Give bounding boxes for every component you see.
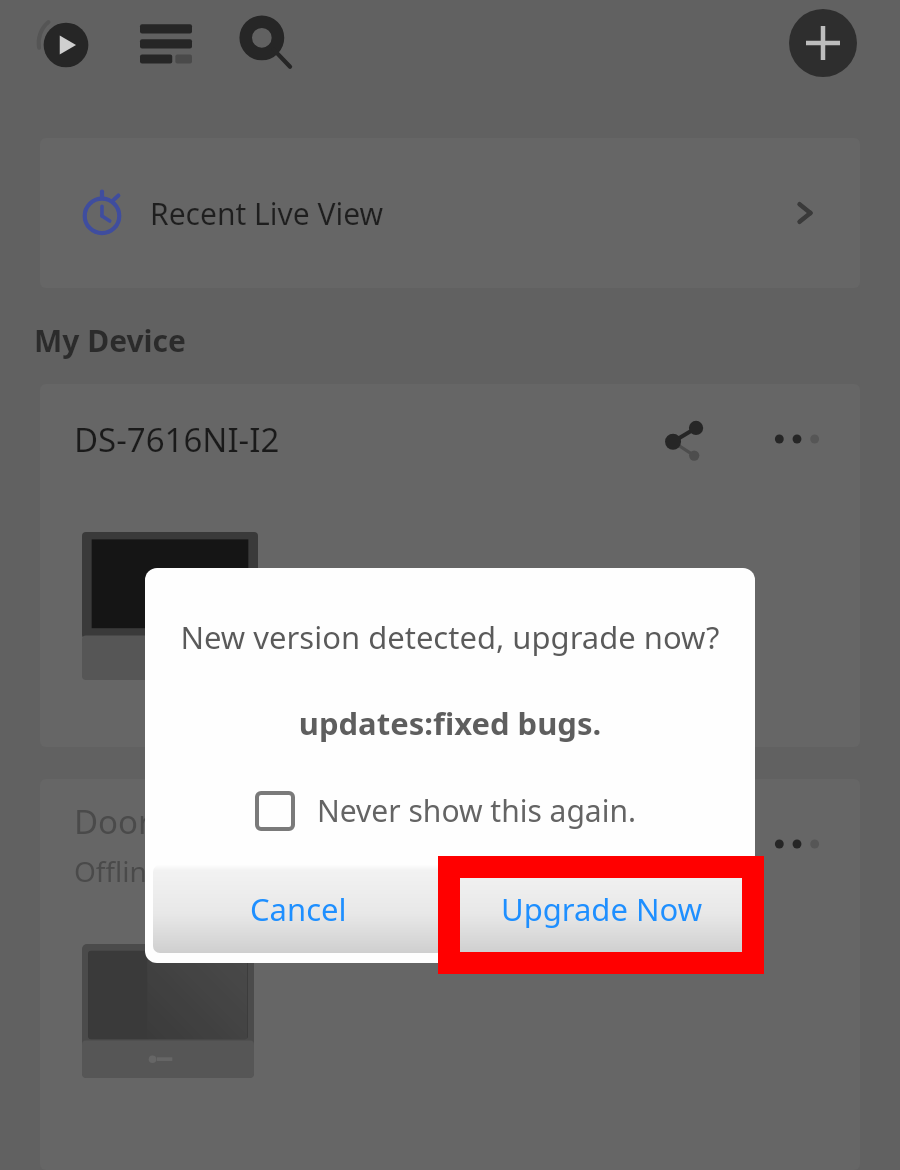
staticText: Recent Live View	[150, 193, 384, 234]
button[interactable]: Recent Live View	[40, 138, 860, 288]
button[interactable]: Door Station	[40, 779, 860, 1170]
button[interactable]: DS-7616NI-I2	[40, 384, 860, 747]
staticText: Cancel	[250, 888, 347, 930]
button[interactable]: Cancel	[153, 865, 444, 953]
button[interactable]: Live view	[34, 11, 98, 75]
staticText: DS-7616NI-I2	[74, 417, 280, 462]
staticText: Offline	[74, 852, 163, 890]
button[interactable]: List	[134, 11, 198, 75]
staticText: My Device	[34, 320, 186, 361]
staticText: updates:fixed bugs.	[145, 702, 755, 744]
staticText: Upgrade Now	[501, 888, 703, 930]
button[interactable]: Share	[656, 410, 714, 468]
button[interactable]: More options	[768, 815, 826, 873]
staticText: Door Station	[74, 799, 270, 844]
staticText: Never show this again.	[317, 790, 637, 831]
button[interactable]: Add device	[789, 9, 857, 77]
staticText: New version detected, upgrade now?	[159, 616, 741, 658]
button[interactable]: Never show this again.	[255, 790, 755, 831]
button[interactable]: Upgrade Now	[456, 865, 747, 953]
button[interactable]: Search	[234, 11, 298, 75]
button[interactable]: More options	[768, 410, 826, 468]
